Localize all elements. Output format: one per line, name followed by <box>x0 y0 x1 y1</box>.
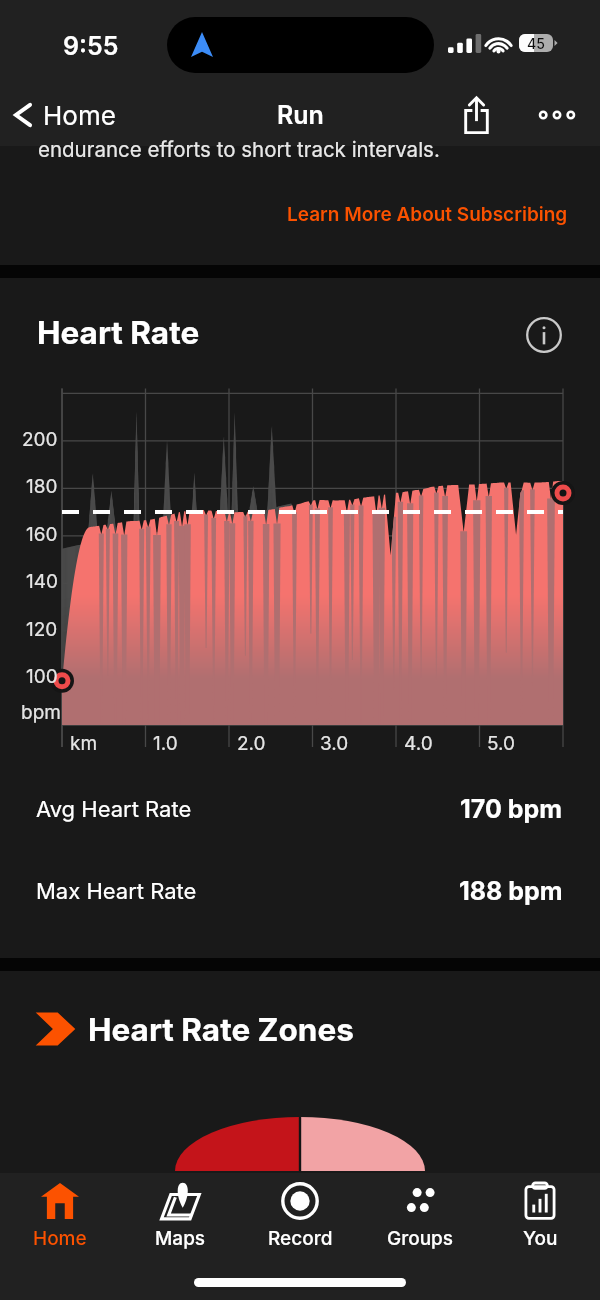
staticText: 9:55 <box>63 31 119 61</box>
staticText: Avg Heart Rate <box>36 796 192 823</box>
staticText: 200 <box>22 428 58 451</box>
staticText: You <box>523 1227 558 1250</box>
staticText: Home <box>33 1227 87 1250</box>
staticText: Run <box>277 100 324 130</box>
staticText: 4.0 <box>404 732 433 755</box>
button[interactable]: Learn More About Subscribing <box>287 203 568 226</box>
button[interactable]: Info <box>524 315 564 355</box>
staticText: 5.0 <box>487 732 516 755</box>
staticText: 3.0 <box>320 732 349 755</box>
staticText: Heart Rate Zones <box>88 1010 354 1048</box>
staticText: Home <box>43 100 116 131</box>
button[interactable]: More options <box>533 91 581 139</box>
staticText: Learn More About Subscribing <box>287 203 568 226</box>
button[interactable]: Share <box>452 91 500 139</box>
button[interactable]: Groups <box>360 1173 480 1265</box>
staticText: 2.0 <box>237 732 266 755</box>
staticText: Heart Rate <box>37 313 200 351</box>
button[interactable]: Record <box>240 1173 360 1265</box>
staticText: endurance efforts to short track interva… <box>38 137 440 162</box>
staticText: bpm <box>21 701 61 724</box>
staticText: Record <box>268 1227 333 1250</box>
button[interactable]: Heart Rate Zones <box>34 1010 354 1048</box>
staticText: 45 <box>527 35 545 52</box>
staticText: 120 <box>26 618 58 641</box>
button[interactable]: Maps <box>120 1173 240 1265</box>
staticText: 170 bpm <box>460 794 563 824</box>
staticText: Maps <box>155 1227 206 1250</box>
staticText: 140 <box>26 570 58 593</box>
staticText: 180 <box>26 475 58 498</box>
staticText: Groups <box>387 1227 454 1250</box>
staticText: km <box>70 732 98 755</box>
staticText: 160 <box>26 523 58 546</box>
staticText: Max Heart Rate <box>36 878 197 905</box>
button[interactable]: Home <box>0 93 126 137</box>
button[interactable]: Home <box>0 1173 120 1265</box>
button[interactable]: Avg Heart Rate <box>0 768 600 850</box>
staticText: 188 bpm <box>459 876 563 906</box>
button[interactable]: Max Heart Rate <box>0 850 600 932</box>
button[interactable]: You <box>480 1173 600 1265</box>
staticText: 100 <box>26 665 58 688</box>
staticText: 1.0 <box>153 732 178 755</box>
